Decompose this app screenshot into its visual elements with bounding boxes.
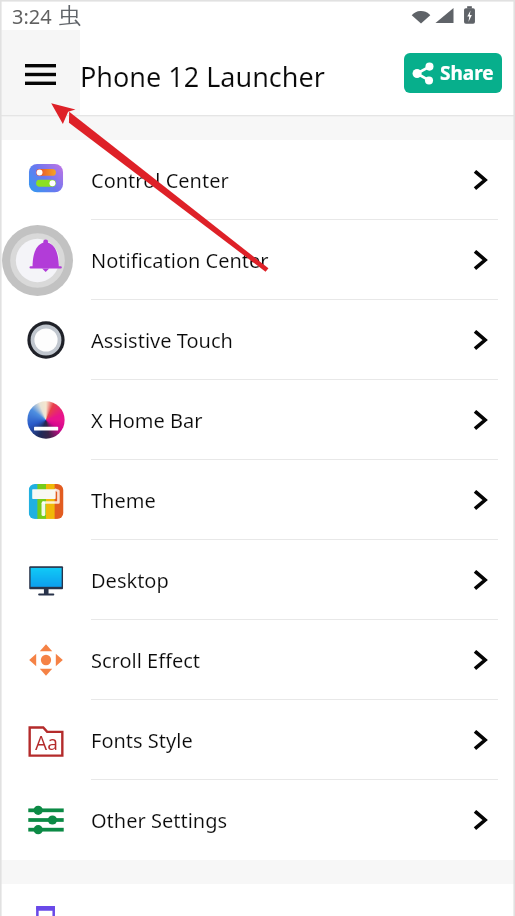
- button[interactable]: X Home Bar: [0, 380, 515, 460]
- staticText: Share: [440, 60, 494, 86]
- button[interactable]: Aa: [0, 700, 515, 780]
- button[interactable]: Open navigation menu: [0, 30, 80, 115]
- staticText: 3:24: [12, 3, 52, 30]
- staticText: Assistive Touch: [91, 327, 233, 354]
- button[interactable]: Notification Center: [0, 220, 515, 300]
- staticText: Phone 12 Launcher: [80, 58, 325, 95]
- button[interactable]: Other Settings: [0, 780, 515, 860]
- staticText: Other Settings: [91, 807, 228, 834]
- button[interactable]: Assistive Touch: [0, 300, 515, 380]
- button[interactable]: More settings: [0, 884, 515, 916]
- staticText: Desktop: [91, 567, 169, 594]
- staticText: X Home Bar: [91, 407, 203, 434]
- staticText: Aa: [35, 730, 58, 756]
- staticText: Scroll Effect: [91, 647, 201, 674]
- button[interactable]: Scroll Effect: [0, 620, 515, 700]
- button[interactable]: Theme: [0, 460, 515, 540]
- button[interactable]: Desktop: [0, 540, 515, 620]
- staticText: Fonts Style: [91, 727, 193, 754]
- staticText: 虫: [59, 2, 81, 30]
- staticText: Notification Center: [91, 247, 269, 274]
- staticText: Theme: [91, 487, 156, 514]
- button[interactable]: Share: [404, 53, 502, 93]
- staticText: Control Center: [91, 167, 229, 194]
- button[interactable]: Control Center: [0, 140, 515, 220]
